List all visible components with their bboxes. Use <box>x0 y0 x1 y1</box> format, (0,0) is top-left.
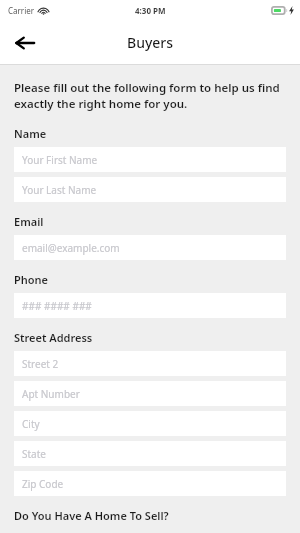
staticText: Your First Name <box>22 153 98 167</box>
button[interactable]: State <box>14 441 286 466</box>
staticText: Email <box>14 214 44 229</box>
button[interactable]: Back <box>10 28 39 57</box>
staticText: Your Last Name <box>22 183 97 197</box>
staticText: Apt Number <box>22 387 80 401</box>
staticText: State <box>22 447 46 461</box>
staticText: email@example.com <box>22 241 120 255</box>
button[interactable]: Zip Code <box>14 471 286 496</box>
button[interactable]: Apt Number <box>14 381 286 406</box>
button[interactable]: Street 2 <box>14 351 286 376</box>
button[interactable]: email@example.com <box>14 235 286 260</box>
button[interactable]: City <box>14 411 286 436</box>
staticText: ### #### ### <box>22 299 92 313</box>
staticText: Name <box>14 126 47 141</box>
staticText: Street 2 <box>22 357 59 371</box>
staticText: Please fill out the following form to he… <box>14 80 286 111</box>
staticText: 4:30 PM <box>135 5 166 16</box>
staticText: City <box>22 417 40 431</box>
staticText: Zip Code <box>22 477 64 491</box>
button[interactable]: Your First Name <box>14 147 286 172</box>
staticText: Phone <box>14 272 49 287</box>
staticText: Buyers <box>127 33 174 52</box>
staticText: Do You Have A Home To Sell? <box>14 508 169 523</box>
staticText: Street Address <box>14 330 93 345</box>
button[interactable]: ### #### ### <box>14 293 286 318</box>
staticText: Carrier <box>8 5 35 16</box>
button[interactable]: Your Last Name <box>14 177 286 202</box>
